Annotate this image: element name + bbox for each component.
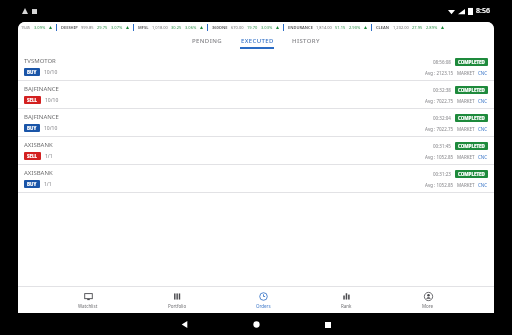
staticText: 670.00 <box>231 25 244 30</box>
button[interactable]: BAJFINANCE <box>18 81 494 109</box>
staticText: ENDURANCE <box>288 25 313 30</box>
button[interactable]: Watchlist <box>68 290 108 311</box>
staticText: 3.07% <box>111 25 123 30</box>
staticText: 2.89% <box>426 25 438 30</box>
staticText: 2.90% <box>349 25 361 30</box>
staticText: DEESHIP <box>61 25 78 30</box>
staticText: 8:56 <box>476 6 490 16</box>
other: Home <box>253 321 260 328</box>
staticText: BAJFINANCE <box>24 113 59 121</box>
staticText: CLEAN <box>376 25 390 30</box>
staticText: COMPLETED <box>458 87 485 93</box>
staticText: Avg : 2123.15 <box>425 70 454 76</box>
staticText: EXECUTED <box>241 37 274 45</box>
staticText: AXISBANK <box>24 169 53 177</box>
staticText: MARKET <box>457 70 475 76</box>
staticText: 1,202.00 <box>393 25 409 30</box>
button[interactable]: AXISBANK <box>18 137 494 165</box>
staticText: 27.95 <box>412 25 423 30</box>
other: Back <box>181 321 188 328</box>
staticText: AXISBANK <box>24 141 53 149</box>
staticText: 19.70 <box>247 25 258 30</box>
staticText: Rank <box>341 303 352 309</box>
button[interactable]: BAJFINANCE <box>18 109 494 137</box>
staticText: SELL <box>27 153 38 159</box>
button[interactable]: HISTORY <box>290 35 322 51</box>
staticText: 00:31:45 <box>433 143 451 149</box>
staticText: Watchlist <box>78 303 98 309</box>
staticText: Avg : 7022.75 <box>425 98 454 104</box>
staticText: 29.75 <box>97 25 108 30</box>
staticText: 30.25 <box>171 25 182 30</box>
staticText: 00:32:38 <box>433 87 451 93</box>
staticText: Avg : 1052.85 <box>425 182 454 188</box>
button[interactable]: AXISBANK <box>18 165 494 193</box>
button[interactable]: More <box>412 290 444 311</box>
staticText: Portfolio <box>168 303 187 309</box>
button[interactable]: EXECUTED <box>238 35 276 51</box>
staticText: BAJFINANCE <box>24 85 59 93</box>
staticText: MARKET <box>457 182 475 188</box>
staticText: BUY <box>27 69 37 75</box>
staticText: CNC <box>478 98 488 104</box>
staticText: SELL <box>27 97 38 103</box>
staticText: 10/10 <box>45 97 59 104</box>
staticText: MARKET <box>457 98 475 104</box>
staticText: CNC <box>478 154 488 160</box>
staticText: 1545 <box>21 25 31 30</box>
button[interactable]: TVSMOTOR <box>18 53 494 81</box>
staticText: COMPLETED <box>458 143 485 149</box>
staticText: 3.06% <box>185 25 197 30</box>
staticText: 1,814.00 <box>316 25 332 30</box>
staticText: 1/1 <box>44 181 52 188</box>
staticText: MFSL <box>138 25 149 30</box>
staticText: 360ONE <box>212 25 228 30</box>
button[interactable]: PENDING <box>190 35 224 51</box>
staticText: 51.15 <box>335 25 346 30</box>
staticText: HISTORY <box>292 37 320 45</box>
staticText: Avg : 1052.85 <box>425 154 454 160</box>
staticText: CNC <box>478 126 488 132</box>
button[interactable]: Portfolio <box>158 290 197 311</box>
staticText: CNC <box>478 182 488 188</box>
staticText: COMPLETED <box>458 171 485 177</box>
staticText: COMPLETED <box>458 115 485 121</box>
staticText: TVSMOTOR <box>24 57 56 65</box>
staticText: More <box>422 303 434 309</box>
staticText: 999.85 <box>81 25 94 30</box>
staticText: MARKET <box>457 126 475 132</box>
staticText: Orders <box>256 303 271 309</box>
staticText: 08:56:08 <box>433 59 451 65</box>
button[interactable]: Rank <box>331 290 362 311</box>
staticText: 3.03% <box>261 25 273 30</box>
staticText: 00:31:23 <box>433 171 451 177</box>
staticText: 1/1 <box>45 153 53 160</box>
button[interactable]: Orders <box>246 290 281 311</box>
staticText: 3.09% <box>34 25 46 30</box>
staticText: PENDING <box>192 37 222 45</box>
staticText: 10/10 <box>44 69 58 76</box>
staticText: 10/10 <box>44 125 58 132</box>
staticText: COMPLETED <box>458 59 485 65</box>
staticText: 00:32:04 <box>433 115 451 121</box>
staticText: 1,018.00 <box>152 25 168 30</box>
staticText: Avg : 7022.75 <box>425 126 454 132</box>
staticText: MARKET <box>457 154 475 160</box>
staticText: CNC <box>478 70 488 76</box>
staticText: BUY <box>27 125 37 131</box>
staticText: BUY <box>27 181 37 187</box>
